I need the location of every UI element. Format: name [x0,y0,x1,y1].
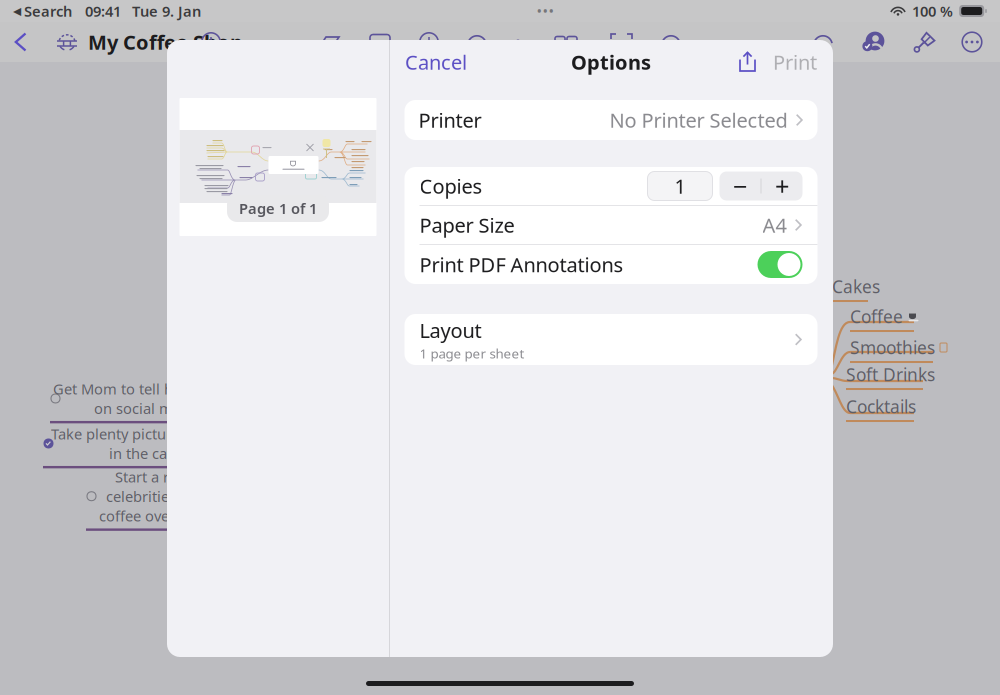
staticText: Printer [418,107,481,133]
staticText: Soft Drinks [846,363,935,386]
staticText: Paper Size [419,212,514,238]
button[interactable]: Style [913,31,936,53]
button[interactable]: Print PDF Annotations [757,251,802,278]
staticText: Start a r [115,467,169,486]
staticText: ◀ [13,5,21,17]
button[interactable]: Cancel [405,43,467,81]
staticText: 09:41 [85,1,121,21]
staticText: on social m [94,398,173,418]
staticText: Get Mom to tell h [53,379,173,398]
staticText: Copies [419,173,482,199]
staticText: Smoothies [850,336,935,359]
staticText: Cancel [405,49,467,75]
staticText: Page 1 of 1 [239,198,317,218]
button[interactable]: Share [738,51,757,73]
button[interactable]: Printer [404,100,817,140]
button[interactable]: Increase copies [761,171,802,200]
staticText: − [733,169,747,203]
staticText: Print [773,49,817,75]
staticText: ••• [536,1,554,21]
staticText: Layout [419,317,481,343]
staticText: + [775,169,789,203]
staticText: Options [571,49,651,75]
staticText: celebritie [106,486,169,506]
button[interactable]: More [961,31,983,53]
staticText: 100 % [912,1,953,21]
staticText: Take plenty pictur [51,424,172,443]
staticText: Print PDF Annotations [419,251,623,278]
staticText: Search [24,1,72,21]
staticText: Cocktails [846,395,916,418]
staticText: 1 page per sheet [419,344,524,362]
button[interactable]: Paper Size [404,206,817,244]
staticText: A4 [762,212,786,238]
staticText: coffee ove [99,506,169,525]
staticText: No Printer Selected [609,107,787,133]
staticText: Tue 9. Jan [132,1,201,21]
button[interactable]: Layout [404,314,817,365]
staticText: Coffee [850,305,903,328]
staticText: My Coffee Shop [88,29,243,55]
button[interactable]: Decrease copies [719,171,760,200]
staticText: Cakes [832,275,880,298]
staticText: in the caf [109,443,172,463]
button[interactable]: Collaborate [862,30,886,54]
button[interactable]: Print [773,43,817,81]
staticText: 1 [674,173,685,199]
button[interactable]: Back [14,32,28,52]
